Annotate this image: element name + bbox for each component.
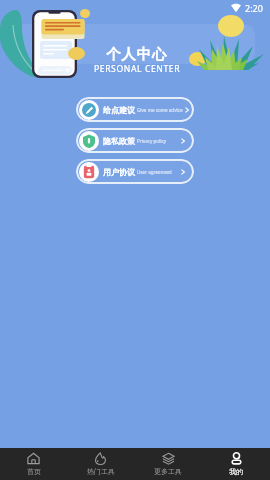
button[interactable]: 我的 (202, 448, 270, 480)
staticText: 隐私政策 (103, 136, 135, 146)
button[interactable]: 首页 (0, 448, 67, 480)
button[interactable]: 用户协议 (76, 159, 194, 184)
staticText: 给点建议 (103, 105, 135, 115)
button[interactable]: 更多工具 (134, 448, 202, 480)
staticText: User agreement (137, 169, 173, 175)
staticText: Give me some advice (137, 107, 183, 113)
staticText: Privacy policy (137, 138, 167, 144)
button[interactable]: 隐私政策 (76, 128, 194, 153)
staticText: 2:20 (245, 2, 263, 14)
button[interactable]: 热门工具 (67, 448, 134, 480)
staticText: 我的 (229, 467, 243, 476)
staticText: 用户协议 (103, 167, 135, 177)
staticText: 个人中心 (106, 45, 168, 63)
staticText: 热门工具 (87, 467, 115, 476)
staticText: 更多工具 (154, 467, 182, 476)
staticText: 首页 (27, 467, 41, 476)
button[interactable]: 给点建议 (76, 97, 194, 122)
staticText: PERSONAL CENTER (94, 63, 181, 75)
